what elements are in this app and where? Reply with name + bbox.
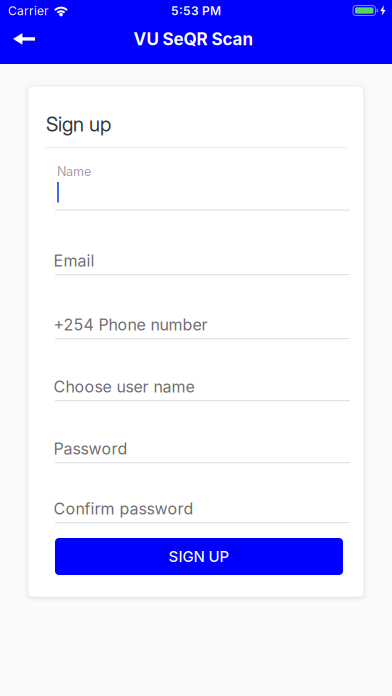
staticText: SIGN UP bbox=[168, 547, 229, 565]
staticText: +254 Phone number bbox=[53, 315, 207, 334]
staticText: Sign up bbox=[46, 112, 111, 136]
button[interactable]: Back bbox=[13, 28, 35, 50]
staticText: Name bbox=[57, 164, 91, 179]
staticText: VU SeQR Scan bbox=[133, 29, 253, 49]
staticText: Confirm password bbox=[53, 499, 193, 518]
staticText: Password bbox=[53, 439, 127, 458]
staticText: Carrier bbox=[8, 3, 49, 18]
staticText: Choose user name bbox=[53, 377, 194, 396]
staticText: Email bbox=[53, 251, 94, 270]
button[interactable]: SIGN UP bbox=[55, 538, 343, 575]
staticText: 5:53 PM bbox=[171, 3, 221, 18]
